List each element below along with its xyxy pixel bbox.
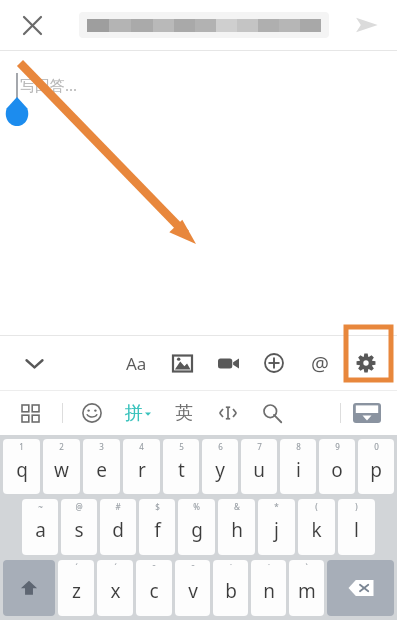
staticText: 4 bbox=[139, 441, 144, 452]
button[interactable]: 9 bbox=[319, 439, 355, 494]
staticText: l bbox=[354, 517, 359, 543]
button[interactable]: 5 bbox=[163, 439, 199, 494]
button[interactable]: ~ bbox=[22, 499, 58, 555]
staticText: w bbox=[54, 457, 69, 483]
button[interactable]: Settings bbox=[343, 340, 389, 386]
button[interactable]: 2 bbox=[43, 439, 80, 494]
staticText: ˊ bbox=[75, 562, 78, 573]
staticText: @ bbox=[75, 501, 83, 512]
staticText: % bbox=[193, 501, 200, 512]
button[interactable]: Insert image bbox=[159, 340, 205, 386]
button[interactable]: Insert video bbox=[205, 340, 251, 386]
staticText: j bbox=[274, 517, 279, 543]
button[interactable]: 3 bbox=[83, 439, 120, 494]
staticText: & bbox=[234, 501, 240, 512]
staticText: $ bbox=[155, 501, 160, 512]
staticText: d bbox=[112, 517, 124, 543]
button[interactable]: ) bbox=[338, 499, 375, 555]
button[interactable]: Hide keyboard bbox=[345, 393, 389, 433]
staticText: 写回答... bbox=[20, 75, 78, 95]
staticText: p bbox=[370, 457, 382, 483]
button[interactable]: 6 bbox=[202, 439, 238, 494]
button[interactable]: % bbox=[178, 499, 215, 555]
staticText: e bbox=[96, 457, 107, 483]
button[interactable]: 1 bbox=[3, 439, 40, 494]
button[interactable]: Text style bbox=[113, 340, 159, 386]
button[interactable]: Collapse bbox=[12, 341, 56, 385]
staticText: @ bbox=[311, 350, 329, 377]
staticText: t bbox=[178, 457, 185, 483]
staticText: 7 bbox=[257, 441, 262, 452]
button[interactable]: 7 bbox=[241, 439, 277, 494]
staticText: ˊ bbox=[114, 562, 117, 573]
staticText: v bbox=[188, 578, 198, 604]
staticText: o bbox=[331, 457, 343, 483]
button[interactable]: 0 bbox=[358, 439, 394, 494]
button[interactable]: ˉ bbox=[175, 560, 210, 616]
staticText: Aa bbox=[126, 352, 147, 375]
staticText: 英 bbox=[175, 402, 193, 425]
staticText: h bbox=[231, 517, 243, 543]
button[interactable]: * bbox=[258, 499, 295, 555]
button[interactable]: # bbox=[100, 499, 136, 555]
staticText: i bbox=[296, 457, 301, 483]
button[interactable]: $ bbox=[139, 499, 175, 555]
staticText: 9 bbox=[335, 441, 340, 452]
button[interactable]: ˙ bbox=[213, 560, 248, 616]
staticText: ˉ bbox=[152, 562, 156, 573]
staticText: 5 bbox=[179, 441, 184, 452]
button[interactable]: ˋ bbox=[289, 560, 324, 616]
staticText: 2 bbox=[59, 441, 64, 452]
button[interactable]: Send bbox=[345, 4, 387, 46]
button[interactable]: ˉ bbox=[136, 560, 172, 616]
button[interactable]: Shift bbox=[3, 560, 55, 616]
staticText: 8 bbox=[296, 441, 301, 452]
staticText: 3 bbox=[99, 441, 104, 452]
button[interactable]: Move cursor bbox=[206, 391, 250, 435]
staticText: ˙ bbox=[230, 562, 232, 573]
button[interactable] bbox=[79, 12, 329, 38]
staticText: ( bbox=[315, 501, 318, 512]
staticText: s bbox=[74, 517, 84, 543]
button[interactable]: 8 bbox=[280, 439, 316, 494]
button[interactable]: 4 bbox=[123, 439, 160, 494]
staticText: q bbox=[16, 457, 28, 483]
staticText: k bbox=[311, 517, 322, 543]
button[interactable]: & bbox=[218, 499, 255, 555]
staticText: u bbox=[253, 457, 265, 483]
button[interactable]: Backspace bbox=[327, 560, 394, 616]
button[interactable]: 英 bbox=[162, 391, 206, 435]
staticText: ˋ bbox=[305, 562, 308, 573]
staticText: * bbox=[274, 501, 279, 512]
button[interactable]: Keyboard layouts bbox=[10, 393, 50, 433]
staticText: ˙ bbox=[268, 562, 270, 573]
staticText: ) bbox=[355, 501, 358, 512]
staticText: # bbox=[115, 501, 121, 512]
button[interactable]: Mention bbox=[297, 340, 343, 386]
staticText: 0 bbox=[374, 441, 379, 452]
staticText: ˉ bbox=[191, 562, 195, 573]
button[interactable]: 拼 bbox=[114, 391, 162, 435]
button[interactable]: @ bbox=[61, 499, 97, 555]
staticText: n bbox=[263, 578, 275, 604]
button[interactable]: Add bbox=[251, 340, 297, 386]
staticText: 拼 bbox=[125, 402, 143, 425]
button[interactable]: ˊ bbox=[97, 560, 133, 616]
staticText: f bbox=[154, 517, 161, 543]
button[interactable]: Emoji bbox=[70, 391, 114, 435]
staticText: c bbox=[149, 578, 159, 604]
staticText: ~ bbox=[38, 501, 43, 512]
button[interactable]: Close bbox=[12, 5, 52, 45]
staticText: 1 bbox=[19, 441, 24, 452]
button[interactable]: ( bbox=[298, 499, 335, 555]
button[interactable]: ˙ bbox=[251, 560, 286, 616]
staticText: m bbox=[298, 578, 316, 604]
staticText: x bbox=[110, 578, 121, 604]
button[interactable]: ˊ bbox=[58, 560, 94, 616]
staticText: z bbox=[72, 578, 81, 604]
staticText: r bbox=[138, 457, 146, 483]
staticText: b bbox=[225, 578, 237, 604]
staticText: y bbox=[215, 457, 225, 483]
staticText: 6 bbox=[218, 441, 223, 452]
button[interactable]: Search bbox=[250, 391, 294, 435]
